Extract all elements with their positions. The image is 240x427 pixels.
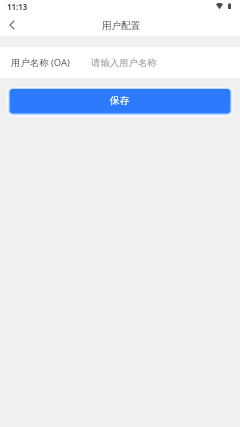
- staticText: 保存: [110, 95, 130, 107]
- staticText: 11:13: [7, 2, 28, 13]
- button[interactable]: 用户名称 (OA): [0, 47, 240, 78]
- staticText: 请输入用户名称: [91, 57, 157, 69]
- button[interactable]: 保存: [10, 89, 230, 113]
- button[interactable]: Back: [0, 13, 23, 36]
- staticText: 用户配置: [102, 20, 141, 32]
- staticText: 用户名称 (OA): [11, 56, 70, 69]
